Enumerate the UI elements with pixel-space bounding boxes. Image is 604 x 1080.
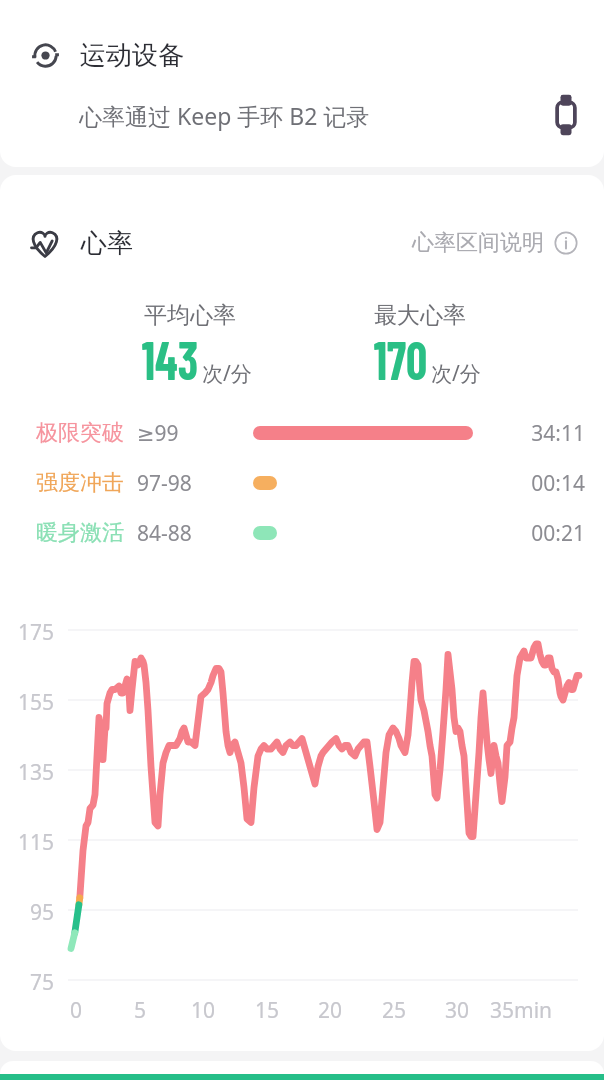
- button[interactable]: 心率通过 Keep 手环 B2 记录: [0, 80, 604, 150]
- button[interactable]: 强度冲击: [0, 458, 604, 508]
- staticText: 暖身激活: [36, 519, 137, 547]
- staticText: 95: [30, 898, 55, 927]
- staticText: 00:21: [528, 519, 585, 548]
- staticText: 10: [191, 996, 216, 1025]
- staticText: 运动设备: [80, 39, 184, 72]
- button[interactable]: 暖身激活: [0, 508, 604, 558]
- staticText: 心率通过 Keep 手环 B2 记录: [79, 100, 370, 131]
- staticText: 97-98: [137, 469, 192, 498]
- button[interactable]: 极限突破: [0, 408, 604, 458]
- staticText: 心率区间说明: [412, 229, 544, 257]
- staticText: 155: [18, 688, 55, 717]
- staticText: 0: [70, 996, 83, 1025]
- staticText: 5: [134, 996, 147, 1025]
- staticText: 心率: [81, 227, 133, 260]
- button[interactable]: Sync device: [0, 15, 604, 95]
- button[interactable]: 心率区间说明: [412, 229, 578, 257]
- staticText: 25: [382, 996, 407, 1025]
- staticText: ≥99: [137, 419, 179, 448]
- staticText: 15: [255, 996, 280, 1025]
- staticText: 115: [18, 828, 55, 857]
- other: Heart rate: [30, 228, 60, 258]
- staticText: 20: [318, 996, 343, 1025]
- staticText: 极限突破: [36, 419, 137, 447]
- staticText: 170: [374, 327, 427, 391]
- staticText: 平均心率: [144, 301, 236, 330]
- other: Band: [554, 94, 578, 136]
- staticText: 次/分: [202, 359, 252, 388]
- staticText: 75: [30, 968, 55, 997]
- other: Sync device: [30, 40, 61, 71]
- staticText: 175: [18, 618, 55, 647]
- staticText: 30: [445, 996, 470, 1025]
- staticText: 最大心率: [374, 301, 466, 330]
- staticText: 135: [18, 758, 55, 787]
- staticText: 强度冲击: [36, 469, 137, 497]
- other: Heart rate zone info: [554, 231, 578, 255]
- staticText: 84-88: [137, 519, 192, 548]
- staticText: 次/分: [431, 359, 481, 388]
- staticText: 34:11: [528, 419, 585, 448]
- staticText: 00:14: [528, 469, 585, 498]
- staticText: 35min: [490, 996, 553, 1025]
- staticText: 143: [142, 327, 198, 391]
